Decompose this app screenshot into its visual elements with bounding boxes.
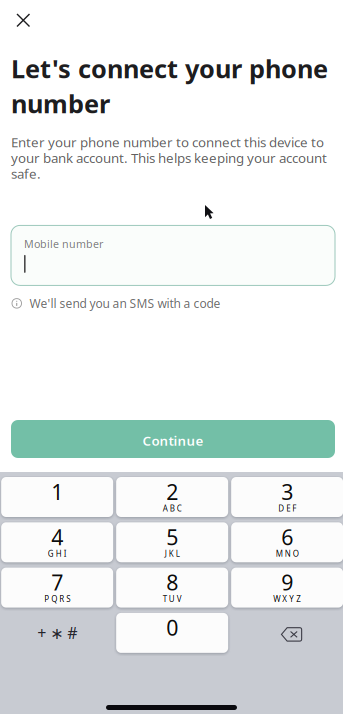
staticText: WXYZ: [273, 594, 301, 604]
button[interactable]: 5: [116, 522, 228, 562]
button[interactable]: 3: [231, 477, 343, 517]
staticText: 9: [281, 568, 293, 596]
staticText: 2: [166, 477, 178, 506]
staticText: 4: [51, 523, 63, 551]
staticText: DEF: [278, 503, 296, 514]
staticText: 7: [51, 568, 63, 596]
staticText: 8: [166, 568, 178, 596]
button[interactable]: 8: [116, 568, 228, 608]
staticText: 5: [166, 523, 178, 551]
staticText: ABC: [163, 503, 182, 514]
button[interactable]: Close: [0, 0, 41, 38]
button[interactable]: 2: [116, 477, 228, 517]
staticText: Mobile number: [24, 237, 103, 251]
button[interactable]: 7: [1, 568, 113, 608]
staticText: Let's connect your phone number: [11, 51, 328, 120]
button[interactable]: 1: [1, 477, 113, 517]
button[interactable]: 6: [231, 522, 343, 562]
button[interactable]: Delete: [231, 613, 343, 653]
staticText: JKL: [165, 548, 180, 559]
staticText: We'll send you an SMS with a code: [29, 295, 220, 311]
staticText: 6: [281, 523, 293, 551]
button[interactable]: 9: [231, 568, 343, 608]
staticText: PQRS: [44, 594, 70, 604]
button[interactable]: Continue: [11, 420, 335, 458]
staticText: MNO: [276, 548, 299, 559]
staticText: TUV: [163, 594, 182, 604]
staticText: + ∗ #: [37, 622, 77, 643]
staticText: 3: [281, 477, 293, 506]
staticText: Continue: [142, 432, 203, 449]
button[interactable]: 4: [1, 522, 113, 562]
staticText: 0: [166, 613, 178, 642]
staticText: GHI: [48, 548, 67, 559]
staticText: 1: [51, 477, 63, 506]
button[interactable]: Symbols: [1, 613, 113, 653]
staticText: Enter your phone number to connect this …: [11, 133, 327, 182]
button[interactable]: 0: [116, 613, 228, 653]
